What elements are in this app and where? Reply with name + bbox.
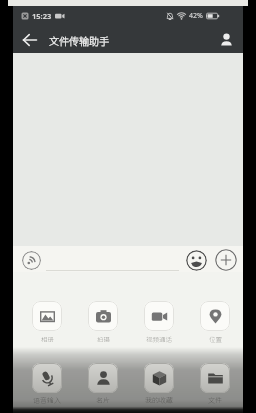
button[interactable] xyxy=(22,251,41,270)
staticText: 语音输入 xyxy=(33,395,61,405)
staticText: 相册 xyxy=(41,334,54,343)
button[interactable] xyxy=(144,363,174,393)
button[interactable] xyxy=(215,249,237,271)
staticText: 15:23 xyxy=(32,11,52,21)
button[interactable] xyxy=(32,363,62,393)
button[interactable] xyxy=(200,301,230,331)
button[interactable] xyxy=(13,26,47,53)
button[interactable] xyxy=(32,301,62,331)
button[interactable] xyxy=(88,363,118,393)
button[interactable] xyxy=(209,26,243,53)
staticText: 拍摄 xyxy=(97,334,110,343)
button[interactable] xyxy=(88,301,118,331)
button[interactable] xyxy=(144,301,174,331)
staticText: 视频通话 xyxy=(146,334,172,343)
button[interactable] xyxy=(186,250,207,271)
staticText: 位置 xyxy=(209,334,222,343)
staticText: 我的收藏 xyxy=(145,395,173,405)
staticText: 文件 xyxy=(208,395,222,405)
staticText: 名片 xyxy=(96,395,110,405)
staticText: 42% xyxy=(189,11,203,21)
staticText: 文件传输助手 xyxy=(49,33,109,47)
button[interactable] xyxy=(200,363,230,393)
